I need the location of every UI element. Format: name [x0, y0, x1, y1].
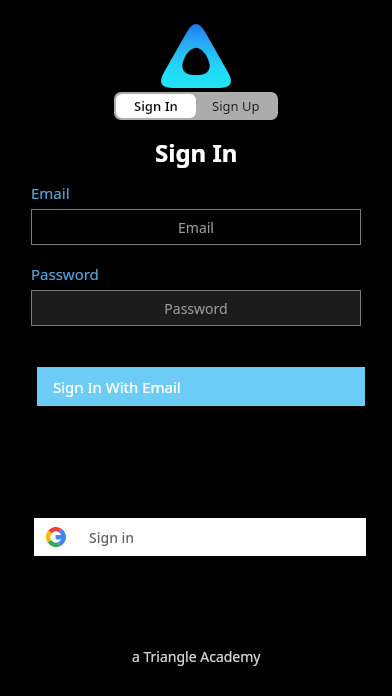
staticText: Email [31, 183, 70, 203]
other: Google [46, 527, 66, 547]
staticText: Password [164, 299, 228, 318]
staticText: Sign In [134, 97, 178, 115]
button[interactable]: Google [34, 518, 366, 556]
button[interactable]: Email [31, 209, 361, 245]
staticText: Sign Up [212, 97, 260, 115]
staticText: Sign In With Email [53, 377, 181, 397]
staticText: Sign In [155, 136, 238, 169]
button[interactable]: Sign Up [196, 94, 276, 118]
staticText: a Triangle Academy [132, 647, 261, 666]
button[interactable]: Sign In With Email [37, 367, 365, 406]
button[interactable]: Sign In [116, 94, 196, 118]
staticText: Email [178, 218, 214, 237]
staticText: Sign in [89, 528, 135, 547]
staticText: Password [31, 264, 99, 284]
button[interactable]: Password [31, 290, 361, 326]
